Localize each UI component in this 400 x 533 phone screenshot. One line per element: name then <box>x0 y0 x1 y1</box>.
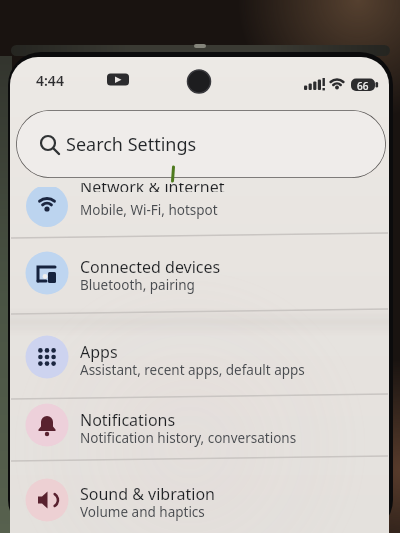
staticText: Mobile, Wi-Fi, hotspot <box>80 201 218 219</box>
staticText: Apps <box>80 341 118 363</box>
staticText: Search Settings <box>66 132 197 157</box>
staticText: 66 <box>357 79 369 93</box>
staticText: Notification history, conversations <box>80 429 297 447</box>
staticText: 4:44 <box>36 71 64 90</box>
button[interactable] <box>10 470 389 533</box>
staticText: Volume and haptics <box>80 503 205 521</box>
staticText: Network & internet <box>80 183 225 192</box>
button[interactable] <box>10 328 389 398</box>
staticText: Notifications <box>80 409 176 431</box>
button[interactable] <box>10 180 389 236</box>
staticText: Connected devices <box>80 256 221 278</box>
staticText: Bluetooth, pairing <box>80 276 195 294</box>
button[interactable] <box>10 396 389 466</box>
staticText: Assistant, recent apps, default apps <box>80 361 305 379</box>
staticText: Sound & vibration <box>80 483 215 505</box>
button[interactable] <box>10 243 389 313</box>
button[interactable]: Search Settings <box>16 110 386 178</box>
